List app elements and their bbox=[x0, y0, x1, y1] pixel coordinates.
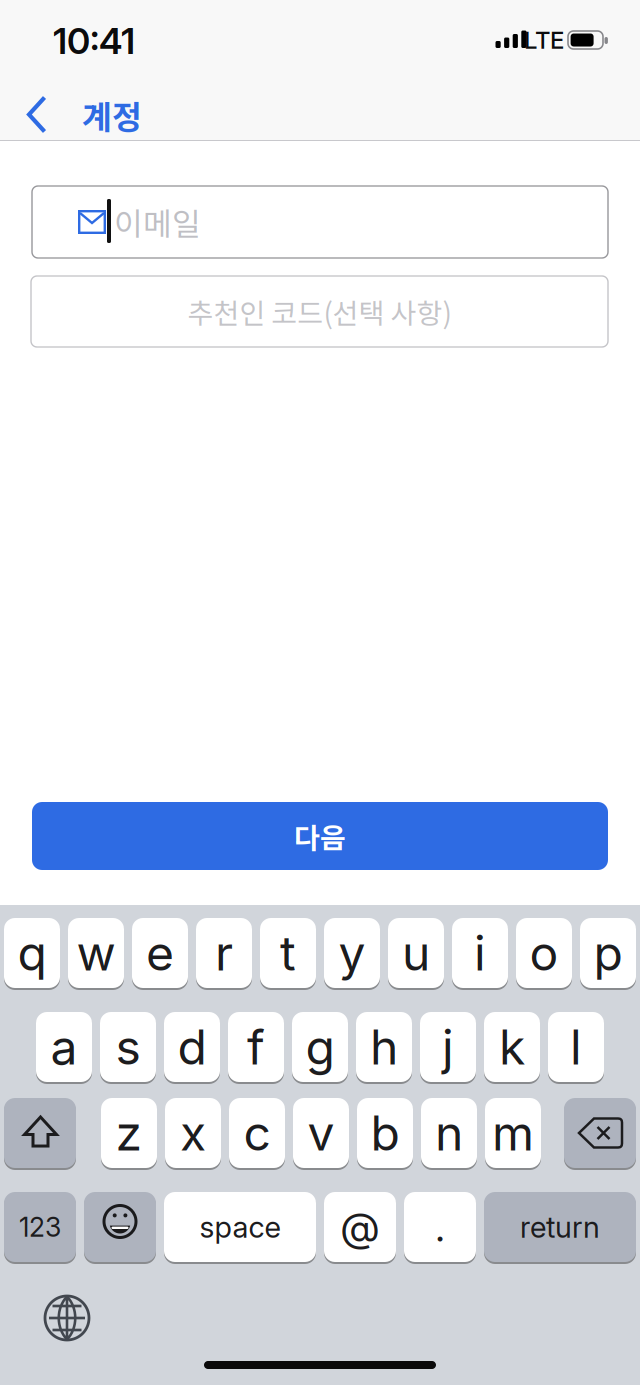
staticText: t bbox=[280, 924, 296, 982]
button[interactable]: Delete bbox=[564, 1098, 636, 1168]
button[interactable]: Referral code (optional) bbox=[31, 276, 608, 347]
button[interactable]: v bbox=[293, 1098, 349, 1168]
staticText: f bbox=[247, 1018, 265, 1076]
button[interactable]: k bbox=[484, 1012, 540, 1082]
staticText: s bbox=[115, 1018, 140, 1076]
staticText: e bbox=[146, 924, 174, 982]
staticText: n bbox=[435, 1104, 463, 1162]
staticText: o bbox=[529, 924, 558, 982]
staticText: r bbox=[215, 924, 233, 982]
button[interactable]: u bbox=[388, 918, 444, 988]
staticText: i bbox=[474, 924, 486, 982]
staticText: space bbox=[199, 1209, 280, 1245]
staticText: u bbox=[402, 924, 430, 982]
staticText: p bbox=[593, 924, 622, 982]
staticText: b bbox=[370, 1104, 399, 1162]
button[interactable]: o bbox=[516, 918, 572, 988]
staticText: 123 bbox=[19, 1211, 61, 1243]
button[interactable]: t bbox=[260, 918, 316, 988]
button[interactable]: y bbox=[324, 918, 380, 988]
button[interactable]: Emoji bbox=[84, 1192, 156, 1262]
staticText: k bbox=[499, 1018, 525, 1076]
button[interactable]: c bbox=[229, 1098, 285, 1168]
button[interactable]: h bbox=[356, 1012, 412, 1082]
button[interactable]: j bbox=[420, 1012, 476, 1082]
staticText: a bbox=[50, 1018, 77, 1076]
button[interactable]: Back bbox=[26, 94, 206, 136]
button[interactable]: Shift bbox=[4, 1098, 76, 1168]
button[interactable]: return bbox=[484, 1192, 636, 1262]
staticText: g bbox=[305, 1018, 334, 1076]
staticText: h bbox=[370, 1018, 398, 1076]
staticText: LTE bbox=[524, 25, 564, 54]
staticText: 다음 bbox=[294, 816, 346, 856]
button[interactable]: x bbox=[165, 1098, 221, 1168]
staticText: 이메일 bbox=[114, 199, 201, 245]
button[interactable]: Email bbox=[32, 186, 608, 258]
staticText: q bbox=[17, 924, 46, 982]
button[interactable]: space bbox=[164, 1192, 316, 1262]
button[interactable]: m bbox=[485, 1098, 541, 1168]
staticText: l bbox=[570, 1018, 582, 1076]
staticText: return bbox=[520, 1209, 600, 1245]
button[interactable]: e bbox=[132, 918, 188, 988]
button[interactable]: @ bbox=[324, 1192, 396, 1262]
staticText: 10:41 bbox=[53, 19, 135, 63]
staticText: c bbox=[243, 1104, 270, 1162]
staticText: j bbox=[442, 1018, 454, 1076]
button[interactable]: g bbox=[292, 1012, 348, 1082]
staticText: . bbox=[435, 1203, 444, 1251]
button[interactable]: d bbox=[164, 1012, 220, 1082]
button[interactable]: Next keyboard bbox=[41, 1292, 93, 1344]
button[interactable]: 123 bbox=[4, 1192, 76, 1262]
staticText: d bbox=[177, 1018, 206, 1076]
button[interactable]: w bbox=[68, 918, 124, 988]
button[interactable]: l bbox=[548, 1012, 604, 1082]
button[interactable]: n bbox=[421, 1098, 477, 1168]
button[interactable]: a bbox=[36, 1012, 92, 1082]
staticText: y bbox=[338, 924, 365, 982]
staticText: z bbox=[115, 1104, 142, 1162]
button[interactable]: f bbox=[228, 1012, 284, 1082]
staticText: 추천인 코드(선택 사항) bbox=[187, 291, 451, 332]
staticText: w bbox=[76, 924, 115, 982]
button[interactable]: q bbox=[4, 918, 60, 988]
staticText: v bbox=[307, 1104, 334, 1162]
button[interactable]: 다음 bbox=[32, 802, 608, 870]
staticText: x bbox=[180, 1104, 206, 1162]
staticText: @ bbox=[340, 1203, 379, 1251]
button[interactable]: p bbox=[580, 918, 636, 988]
button[interactable]: s bbox=[100, 1012, 156, 1082]
button[interactable]: . bbox=[404, 1192, 476, 1262]
button[interactable]: r bbox=[196, 918, 252, 988]
button[interactable]: b bbox=[357, 1098, 413, 1168]
button[interactable]: z bbox=[101, 1098, 157, 1168]
staticText: 계정 bbox=[82, 91, 142, 139]
staticText: m bbox=[492, 1104, 534, 1162]
button[interactable]: i bbox=[452, 918, 508, 988]
